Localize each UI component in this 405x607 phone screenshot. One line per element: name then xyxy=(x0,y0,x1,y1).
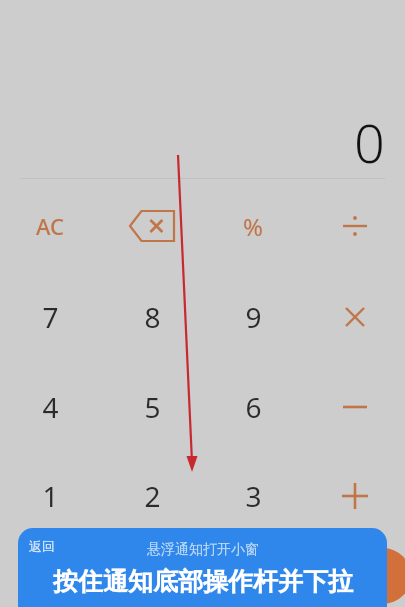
button[interactable]: Nine xyxy=(203,287,303,347)
button[interactable]: Five xyxy=(102,377,202,437)
button[interactable]: One xyxy=(0,466,100,526)
button[interactable]: Plus xyxy=(305,466,405,526)
staticText: 8 xyxy=(144,298,161,336)
staticText: % xyxy=(243,210,263,243)
button[interactable]: Backspace xyxy=(102,196,202,256)
button[interactable]: Minus xyxy=(305,377,405,437)
staticText: 1 xyxy=(42,477,59,515)
button[interactable]: Six xyxy=(203,377,303,437)
button[interactable]: Divide xyxy=(305,196,405,256)
staticText: 5 xyxy=(144,388,161,426)
staticText: 悬浮通知打开小窗 xyxy=(147,541,259,559)
staticText: 9 xyxy=(245,298,262,336)
button[interactable]: Percent xyxy=(203,196,303,256)
staticText: AC xyxy=(36,211,64,241)
staticText: 2 xyxy=(144,477,161,515)
button[interactable]: Eight xyxy=(102,287,202,347)
staticText: 按住通知底部操作杆并下拉 xyxy=(53,566,353,597)
button[interactable]: Three xyxy=(203,466,303,526)
staticText: 6 xyxy=(245,388,262,426)
button[interactable]: Seven xyxy=(0,287,100,347)
staticText: 4 xyxy=(42,388,59,426)
button[interactable]: Two xyxy=(102,466,202,526)
button[interactable]: 返回 xyxy=(29,538,55,554)
button[interactable]: Display xyxy=(235,105,385,175)
staticText: 返回 xyxy=(29,538,55,554)
button[interactable]: Multiply xyxy=(305,287,405,347)
staticText: 7 xyxy=(42,298,59,336)
button[interactable]: Four xyxy=(0,377,100,437)
button[interactable]: Notification xyxy=(18,528,387,607)
button[interactable]: All clear xyxy=(0,196,100,256)
staticText: 0 xyxy=(354,105,385,175)
staticText: 3 xyxy=(245,477,262,515)
button[interactable]: Equals xyxy=(355,548,405,604)
